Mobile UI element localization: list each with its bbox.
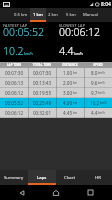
staticText: km <box>73 111 78 115</box>
staticText: 4.00 <box>63 100 73 106</box>
button[interactable]: 5 km <box>60 8 81 22</box>
staticText: 00:06:13 <box>0 80 28 86</box>
staticText: 00:06:12 <box>0 110 28 116</box>
staticText: 1.00 <box>63 70 73 76</box>
staticText: km <box>73 91 78 95</box>
staticText: TOTAL TIME <box>28 63 56 67</box>
button[interactable]: Summary <box>0 170 28 185</box>
staticText: 00:05:52 <box>3 25 45 39</box>
button[interactable]: Home <box>44 185 68 200</box>
staticText: 00:07:30 <box>28 70 56 76</box>
button[interactable]: 00:07:30 <box>0 68 112 78</box>
button[interactable]: 1 km <box>30 8 46 22</box>
button[interactable]: HR <box>84 170 112 185</box>
staticText: 00:07:30 <box>0 70 28 76</box>
staticText: 00:06:12 <box>0 90 28 96</box>
button[interactable]: 0.5 km <box>12 8 30 22</box>
button[interactable]: 00:05:52 <box>0 98 112 108</box>
staticText: 5 km <box>66 12 76 18</box>
staticText: FASTEST LAP <box>3 23 28 28</box>
staticText: km <box>73 71 78 75</box>
staticText: 4.4 <box>91 110 98 116</box>
staticText: Chart <box>64 175 76 181</box>
button[interactable]: 00:06:12 <box>0 88 112 98</box>
staticText: km/h <box>100 101 107 105</box>
button[interactable]: Manual <box>81 8 100 22</box>
staticText: 3.00 <box>63 90 73 96</box>
staticText: km/h <box>98 71 105 75</box>
staticText: km/h <box>98 91 105 95</box>
staticText: 10.2 <box>90 100 100 106</box>
button[interactable]: 2 km <box>46 8 60 22</box>
staticText: HR <box>95 175 101 181</box>
staticText: 4.45 <box>63 110 73 116</box>
staticText: 00:06:12 <box>59 25 101 39</box>
staticText: 00:19:55 <box>28 90 56 96</box>
staticText: 1 km <box>33 12 43 18</box>
staticText: 00:32:01 <box>28 110 56 116</box>
button[interactable]: 00:06:13 <box>0 78 112 88</box>
button[interactable]: 00:06:12 <box>0 108 112 118</box>
button[interactable]: Chart <box>56 170 84 185</box>
staticText: 8:04 <box>101 1 111 8</box>
staticText: 00:25:48 <box>28 100 56 106</box>
staticText: km/h <box>74 51 83 56</box>
staticText: 10.2 <box>3 44 24 58</box>
staticText: 2.00 <box>63 80 73 86</box>
staticText: LAP TIME <box>0 63 28 67</box>
staticText: 4.4 <box>59 44 74 58</box>
button[interactable]: Back <box>10 185 34 200</box>
staticText: SPEED <box>84 63 112 67</box>
staticText: 0.5 km <box>14 12 28 18</box>
staticText: Laps <box>37 175 47 181</box>
staticText: km/h <box>98 111 105 115</box>
staticText: 9.6 <box>91 80 98 86</box>
button[interactable]: Laps <box>28 170 56 185</box>
staticText: km/h <box>24 51 33 56</box>
staticText: Manual <box>83 12 99 18</box>
staticText: 9.7 <box>91 90 98 96</box>
staticText: km <box>73 81 78 85</box>
staticText: 2 km <box>48 12 58 18</box>
staticText: km <box>73 101 78 105</box>
staticText: SLOWEST LAP <box>59 23 86 28</box>
staticText: 8.0 <box>91 70 98 76</box>
staticText: DISTANCE <box>56 63 84 67</box>
staticText: 00:05:52 <box>0 100 28 106</box>
staticText: Summary <box>4 175 24 181</box>
staticText: km/h <box>98 81 105 85</box>
button[interactable]: Recent apps <box>78 185 102 200</box>
staticText: 00:13:43 <box>28 80 56 86</box>
